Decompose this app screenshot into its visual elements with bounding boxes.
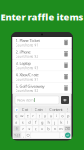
staticText: n <box>54 126 56 131</box>
button[interactable]: Shift <box>13 126 19 131</box>
button[interactable]: 1. Plane Ticket <box>12 37 71 48</box>
staticText: + <box>63 96 67 104</box>
button[interactable]: Emoji <box>26 132 30 138</box>
staticText: Count/items: $2 <box>15 89 38 93</box>
staticText: G <box>15 108 17 111</box>
staticText: h <box>47 120 49 125</box>
button[interactable]: h <box>46 119 51 125</box>
staticText: w <box>20 113 23 118</box>
staticText: o <box>61 113 63 118</box>
button[interactable]: Backspace <box>64 126 70 131</box>
button[interactable]: Add item <box>61 96 69 104</box>
button[interactable]: x <box>27 126 32 131</box>
button[interactable]: r <box>31 113 36 118</box>
staticText: y <box>44 113 46 118</box>
staticText: Count/items: $1 <box>15 78 38 81</box>
staticText: Catn <box>34 107 42 112</box>
staticText: Count/items: $3 <box>15 66 38 70</box>
button[interactable]: u <box>48 113 53 118</box>
staticText: 1. Plane Ticket <box>15 38 39 43</box>
button[interactable]: l <box>65 119 70 125</box>
staticText: ?123 <box>13 133 20 137</box>
staticText: Cat <box>22 107 28 112</box>
button[interactable]: i <box>54 113 59 118</box>
staticText: 2. iPhone <box>15 49 30 54</box>
staticText: l <box>67 120 68 125</box>
staticText: 3. Laptop <box>15 61 30 66</box>
staticText: ⇧ <box>15 126 18 131</box>
button[interactable]: 2. iPhone <box>12 48 71 59</box>
staticText: , <box>23 133 24 138</box>
button[interactable]: 5. Golf Giveaway <box>12 83 71 94</box>
button[interactable]: a <box>13 119 19 125</box>
button[interactable]: g <box>39 119 45 125</box>
button[interactable]: 4. Xbox/Crate <box>12 71 71 82</box>
staticText: ↵ <box>66 133 69 137</box>
staticText: i <box>56 113 57 118</box>
button[interactable]: o <box>60 113 65 118</box>
staticText: e <box>27 113 29 118</box>
button[interactable]: b <box>46 126 51 131</box>
staticText: ⌫ <box>64 126 70 131</box>
button[interactable]: k <box>58 119 64 125</box>
staticText: u <box>50 113 52 118</box>
button[interactable]: . <box>60 132 64 138</box>
staticText: 4. Xbox/Crate <box>15 72 38 77</box>
staticText: Enter raffle items <box>0 11 83 23</box>
button[interactable]: s <box>20 119 25 125</box>
button[interactable]: p <box>65 113 70 118</box>
button[interactable]: 3. Laptop <box>12 60 71 71</box>
staticText: x <box>28 126 30 131</box>
staticText: b <box>47 126 49 131</box>
staticText: 5. Golf Giveaway <box>15 83 44 89</box>
button[interactable]: , <box>21 132 25 138</box>
staticText: a <box>15 120 17 125</box>
button[interactable]: m <box>58 126 64 131</box>
button[interactable]: ?123 <box>13 132 20 138</box>
staticText: Count/items: $1 <box>15 44 38 47</box>
staticText: j <box>54 120 55 125</box>
button[interactable]: Enter <box>65 132 70 138</box>
button[interactable]: e <box>25 113 30 118</box>
staticText: f <box>35 120 36 125</box>
button[interactable]: n <box>52 126 57 131</box>
staticText: r <box>32 113 34 118</box>
staticText: s <box>22 120 24 125</box>
staticText: m <box>59 126 63 131</box>
staticText: Count/items: $2 <box>15 55 38 58</box>
staticText: c <box>35 126 37 131</box>
button[interactable]: t <box>37 113 42 118</box>
button[interactable]: w <box>19 113 24 118</box>
button[interactable]: Space <box>31 132 59 138</box>
staticText: g <box>41 120 43 125</box>
staticText: t <box>39 113 40 118</box>
button[interactable]: d <box>26 119 32 125</box>
staticText: z <box>22 126 24 131</box>
button[interactable]: y <box>42 113 47 118</box>
staticText: . <box>62 133 63 138</box>
staticText: q <box>15 113 17 118</box>
button[interactable]: v <box>39 126 45 131</box>
button[interactable]: c <box>33 126 38 131</box>
button[interactable]: z <box>20 126 26 131</box>
button[interactable]: q <box>13 113 18 118</box>
staticText: d <box>28 120 30 125</box>
button[interactable]: j <box>52 119 58 125</box>
staticText: p <box>67 113 69 118</box>
staticText: New item <box>17 97 34 103</box>
staticText: v <box>41 126 43 131</box>
staticText: Content <box>49 107 62 112</box>
button[interactable]: f <box>33 119 38 125</box>
staticText: k <box>60 120 62 125</box>
staticText: ⋮ <box>65 107 69 112</box>
